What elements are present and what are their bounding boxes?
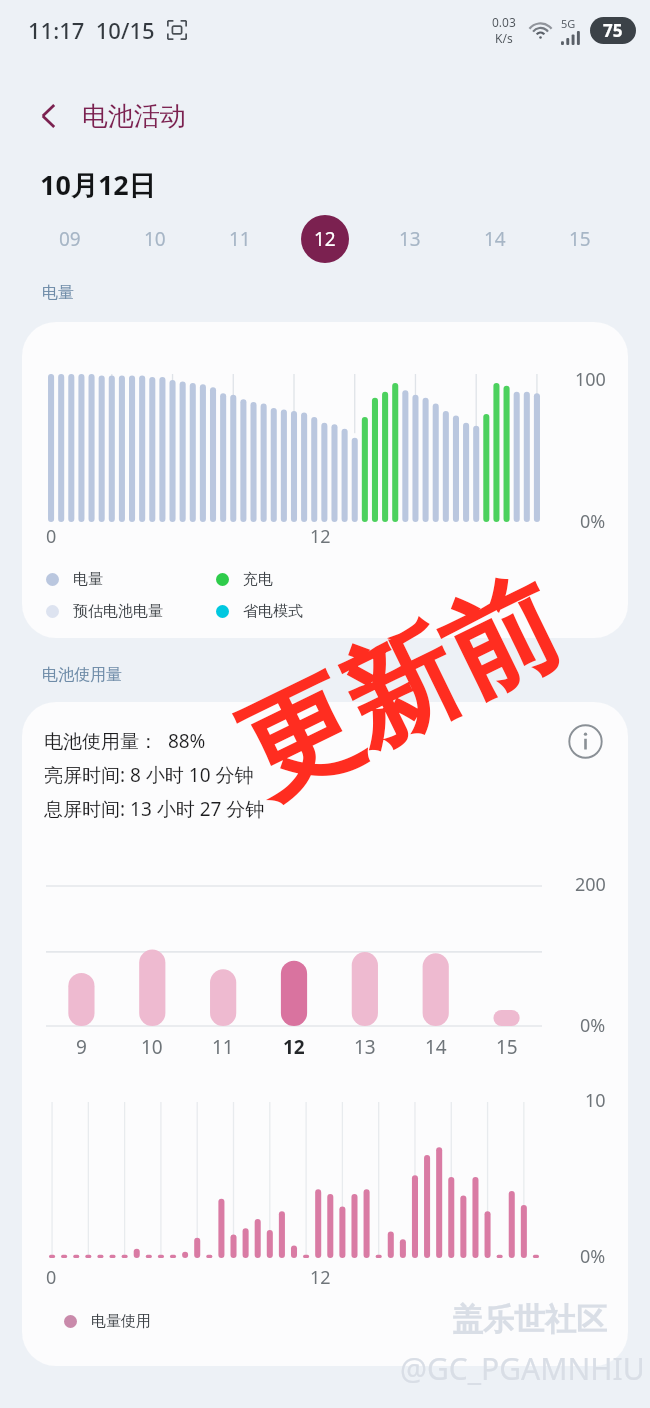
staticText: 200 — [575, 872, 606, 897]
staticText: 10月12日 — [40, 166, 156, 203]
staticText: 亮屏时间: 8 小时 10 分钟 — [44, 762, 254, 788]
staticText: 12 — [314, 226, 336, 252]
button[interactable]: 返回 — [26, 93, 72, 139]
staticText: 12 — [283, 1034, 305, 1060]
staticText: K/s — [495, 30, 513, 46]
staticText: 100 — [575, 367, 606, 392]
staticText: 电池活动 — [82, 100, 186, 133]
staticText: 充电 — [243, 570, 273, 589]
staticText: 10 — [141, 1034, 163, 1060]
staticText: 9 — [76, 1034, 87, 1060]
staticText: 12 — [310, 1265, 331, 1290]
staticText: 11:17 10/15 — [28, 15, 155, 45]
staticText: 电池使用量： 88% — [44, 728, 206, 754]
button[interactable]: 09 — [28, 213, 112, 265]
button[interactable]: 11 — [197, 213, 282, 265]
button[interactable]: 14 — [452, 213, 537, 265]
staticText: 0 — [46, 524, 57, 549]
staticText: 更新前 — [218, 551, 582, 825]
button[interactable]: 12 — [282, 213, 367, 265]
staticText: 10 — [144, 226, 166, 252]
staticText: 0 — [46, 1265, 57, 1290]
staticText: 预估电池电量 — [73, 602, 163, 621]
staticText: 电量使用 — [91, 1312, 151, 1331]
staticText: 电量 — [42, 283, 74, 303]
staticText: 省电模式 — [243, 602, 303, 621]
staticText: 盖乐世社区 — [452, 1300, 607, 1339]
staticText: @GC_PGAMNHIU — [400, 1348, 645, 1389]
button[interactable]: 15 — [537, 213, 622, 265]
staticText: 14 — [425, 1034, 447, 1060]
staticText: 11 — [229, 226, 251, 252]
button[interactable]: 10 — [112, 213, 197, 265]
button[interactable]: 信息 — [562, 718, 608, 764]
staticText: 0.03 — [492, 14, 516, 30]
staticText: 09 — [59, 226, 81, 252]
staticText: 15 — [569, 226, 591, 252]
staticText: 14 — [484, 226, 506, 252]
staticText: 15 — [496, 1034, 518, 1060]
staticText: 电量 — [73, 570, 103, 589]
staticText: 10 — [585, 1088, 606, 1113]
staticText: 电池使用量 — [42, 665, 122, 685]
staticText: 11 — [212, 1034, 234, 1060]
staticText: 13 — [354, 1034, 376, 1060]
button[interactable]: 100 — [22, 322, 628, 638]
button[interactable]: 13 — [367, 213, 452, 265]
staticText: 0% — [580, 509, 606, 534]
staticText: 13 — [399, 226, 421, 252]
staticText: 0% — [580, 1013, 606, 1038]
staticText: 息屏时间: 13 小时 27 分钟 — [44, 796, 265, 822]
staticText: 12 — [310, 524, 331, 549]
staticText: 5G — [561, 16, 576, 31]
staticText: 75 — [603, 19, 623, 42]
staticText: 0% — [580, 1244, 606, 1269]
